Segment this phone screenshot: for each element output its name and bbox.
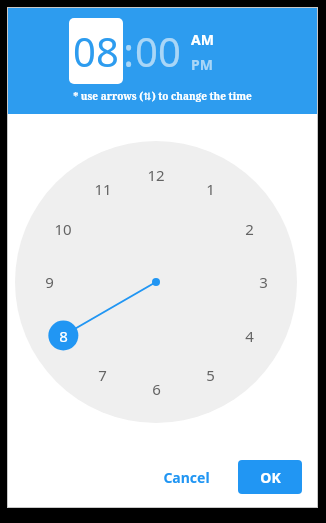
staticText: Cancel <box>163 468 210 487</box>
button[interactable]: 08 <box>69 18 123 84</box>
staticText: 6 <box>152 379 161 399</box>
staticText: PM <box>191 55 213 74</box>
staticText: 3 <box>259 272 268 292</box>
staticText: 12 <box>147 165 165 185</box>
staticText: AM <box>191 30 214 49</box>
staticText: OK <box>260 468 281 487</box>
staticText: 7 <box>98 365 107 385</box>
button[interactable]: Cancel <box>149 460 224 495</box>
staticText: 5 <box>206 365 215 385</box>
staticText: : <box>123 24 134 78</box>
staticText: 9 <box>45 272 54 292</box>
button[interactable]: AM <box>191 30 214 49</box>
staticText: 08 <box>73 24 119 78</box>
staticText: 11 <box>94 179 112 199</box>
staticText: 4 <box>245 326 254 346</box>
button[interactable]: Clock dial, hour 8 selected <box>7 114 318 446</box>
staticText: 2 <box>245 219 254 239</box>
staticText: * use arrows (⇅) to change the time <box>73 89 252 103</box>
button[interactable]: 00 <box>134 18 181 78</box>
staticText: 8 <box>59 326 68 346</box>
button[interactable]: PM <box>191 55 213 74</box>
staticText: 1 <box>206 179 215 199</box>
button[interactable]: OK <box>238 460 302 494</box>
staticText: 00 <box>135 24 181 78</box>
staticText: 10 <box>54 219 72 239</box>
